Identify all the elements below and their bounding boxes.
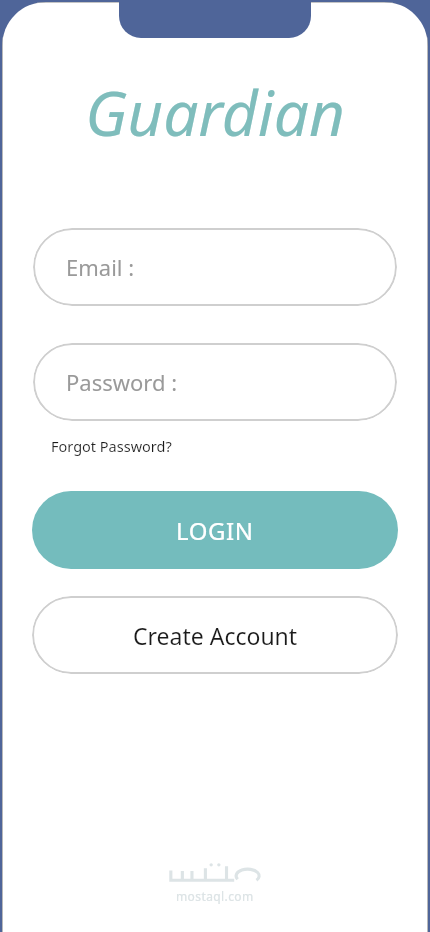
staticText: Guardian <box>85 70 345 154</box>
button[interactable]: Create Account <box>32 596 398 674</box>
button[interactable]: Password : <box>33 343 397 421</box>
button[interactable]: Forgot Password? <box>49 434 174 458</box>
staticText: Email : <box>66 252 135 282</box>
staticText: mostaql.com <box>176 888 254 904</box>
staticText: Forgot Password? <box>51 436 172 456</box>
other: mostaql watermark <box>167 861 263 885</box>
staticText: Create Account <box>133 620 298 651</box>
staticText: LOGIN <box>176 514 254 547</box>
button[interactable]: Email : <box>33 228 397 306</box>
button[interactable]: LOGIN <box>32 491 398 569</box>
staticText: Password : <box>66 367 178 397</box>
